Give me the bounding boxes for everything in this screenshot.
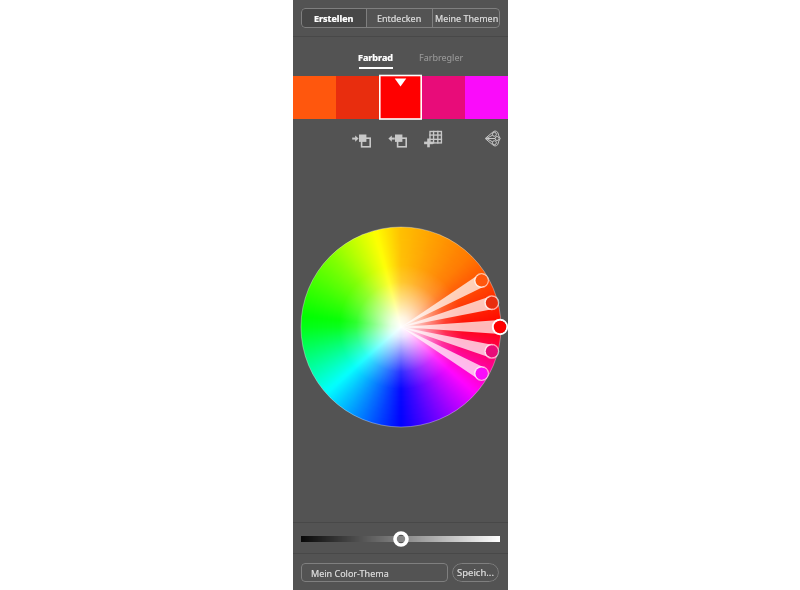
staticText: Meine Themen (435, 12, 499, 24)
button[interactable]: Set as active color (351, 129, 373, 151)
button[interactable]: Farbrad (358, 51, 393, 69)
button[interactable]: Meine Themen (433, 8, 500, 28)
button[interactable]: Erstellen (301, 8, 366, 28)
button[interactable]: Color harmony rule (481, 129, 503, 151)
staticText: Mein Color-Thema (311, 567, 389, 579)
button[interactable]: Entdecken (367, 8, 432, 28)
button[interactable]: Add theme to swatches (424, 129, 446, 151)
staticText: Erstellen (314, 12, 354, 24)
button[interactable] (379, 76, 422, 119)
button[interactable]: Color wheel (293, 160, 508, 500)
button[interactable]: Brightness (393, 531, 409, 547)
staticText: Entdecken (377, 12, 422, 24)
button[interactable] (379, 76, 422, 119)
button[interactable]: Speich... (452, 563, 499, 582)
button[interactable]: Set from active color (387, 129, 409, 151)
button[interactable]: Farbregler (419, 51, 464, 63)
button[interactable]: Mein Color-Thema (301, 563, 448, 582)
staticText: Farbrad (358, 51, 393, 63)
staticText: Speich... (457, 566, 494, 579)
staticText: Farbregler (419, 51, 464, 63)
